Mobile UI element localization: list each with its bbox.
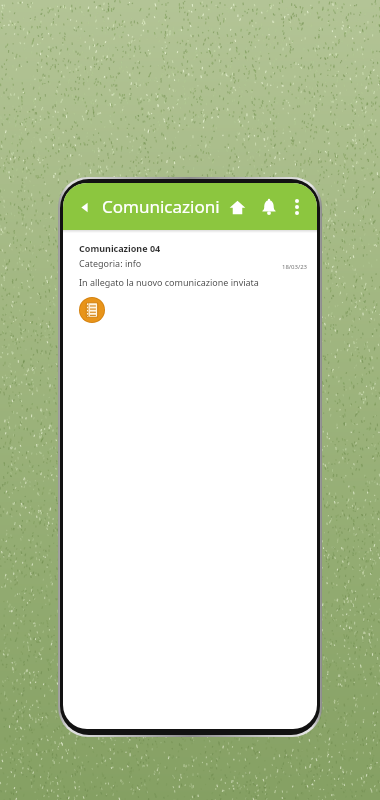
button[interactable]: Notifications [254, 192, 284, 222]
button[interactable]: More options [285, 195, 309, 219]
button[interactable]: Home [222, 192, 252, 222]
button[interactable]: Comunicazione 04 [63, 233, 317, 331]
staticText: Comunicazione 04 [79, 242, 161, 254]
staticText: 18/03/23 [281, 263, 307, 271]
button[interactable]: Open attachment [79, 297, 105, 323]
staticText: Categoria: info [79, 257, 142, 269]
staticText: Comunicazioni [102, 195, 220, 218]
button[interactable]: Back [73, 196, 95, 218]
staticText: In allegato la nuovo comunicazione invia… [79, 276, 259, 288]
